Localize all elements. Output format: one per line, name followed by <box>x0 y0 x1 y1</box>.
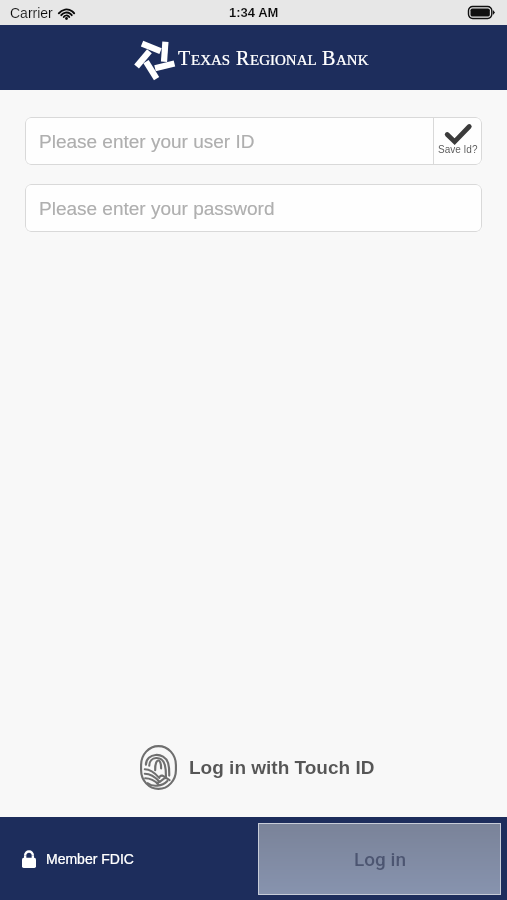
staticText: Save Id? <box>438 144 478 155</box>
staticText: Log in <box>354 848 406 870</box>
other: Texas Regional Bank <box>134 38 369 78</box>
staticText: R <box>231 47 250 69</box>
staticText: EXAS <box>191 52 231 69</box>
staticText: Please enter your password <box>39 198 275 219</box>
staticText: 1:34 AM <box>229 5 279 20</box>
staticText: Please enter your user ID <box>39 131 255 152</box>
button[interactable]: Log in with Touch ID <box>4 745 507 790</box>
button[interactable]: Please enter your user ID <box>25 117 433 165</box>
staticText: B <box>317 47 336 69</box>
button[interactable]: Save Id <box>434 117 482 165</box>
staticText: EGIONAL <box>250 52 317 69</box>
staticText: ANK <box>336 52 369 69</box>
staticText: T <box>178 47 191 69</box>
staticText: Carrier <box>10 5 53 21</box>
button[interactable]: Member FDIC <box>22 850 134 868</box>
staticText: Member FDIC <box>46 851 134 867</box>
button[interactable]: Please enter your password <box>25 184 482 232</box>
staticText: Log in with Touch ID <box>189 757 375 778</box>
button[interactable]: Log in <box>259 824 500 894</box>
